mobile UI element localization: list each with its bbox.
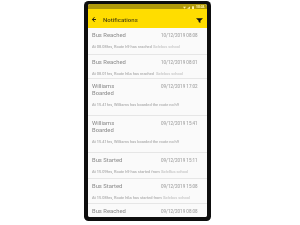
staticText: 09/12/2019 17:02: [161, 84, 198, 89]
staticText: Bus Reached: [92, 32, 126, 39]
staticText: Williams Boarded: [92, 83, 115, 97]
staticText: At 08.01hrs, Route h6a has reached: [92, 71, 156, 76]
staticText: 10/12/2019 08:08: [161, 33, 198, 38]
staticText: 09/12/2019 08:08: [161, 209, 198, 214]
staticText: SafeBus school: [161, 169, 189, 174]
staticText: At 15.09hrs, Route h9 has started from: [92, 169, 161, 174]
button[interactable]: Bus Reached: [88, 55, 207, 78]
staticText: At 15.41hrs, Williams has boarded the ro…: [92, 139, 179, 144]
button[interactable]: Filter: [192, 9, 207, 28]
staticText: 10:24: [196, 5, 205, 9]
button[interactable]: Bus Started: [88, 153, 207, 178]
button[interactable]: Bus Started: [88, 179, 207, 203]
button[interactable]: Bus Reached: [88, 28, 207, 54]
staticText: Notifications: [103, 16, 138, 23]
button[interactable]: Williams Boarded: [88, 116, 207, 152]
staticText: Bus Reached: [92, 59, 126, 66]
staticText: 10/12/2019 08:01: [161, 60, 198, 65]
staticText: Bus Started: [92, 157, 123, 164]
staticText: Bus Started: [92, 183, 123, 190]
staticText: Safebus school: [153, 44, 180, 49]
button[interactable]: Back: [89, 9, 101, 28]
staticText: 09/12/2019 15:11: [161, 158, 198, 163]
staticText: 09/12/2019 15:41: [161, 121, 198, 126]
staticText: At 15.41hrs, Williams has boarded the ro…: [92, 102, 179, 107]
staticText: Safebus school: [156, 71, 183, 76]
button[interactable]: Williams Boarded: [88, 79, 207, 115]
staticText: Williams Boarded: [92, 120, 115, 134]
staticText: At 08.08hrs, Route h9 has reached: [92, 44, 153, 49]
staticText: At 15.08hrs, Route h6a has started from: [92, 195, 163, 200]
staticText: 09/12/2019 15:08: [161, 184, 198, 189]
staticText: Safebus school: [163, 195, 190, 200]
staticText: Bus Reached: [92, 208, 126, 215]
button[interactable]: Bus Reached: [88, 204, 207, 217]
